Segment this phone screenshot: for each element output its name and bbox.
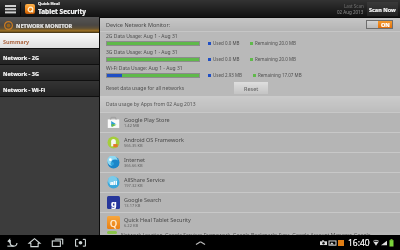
staticText: 3G Data Usage: Aug 1 - Aug 31 [106,49,178,56]
button[interactable]: Android OS Framework [100,132,400,152]
button[interactable]: Q [100,212,400,232]
button[interactable]: Scan Now [367,2,398,16]
staticText: Internet [124,156,146,163]
staticText: Reset data usage for all networks [106,85,185,92]
staticText: Device Network Monitor: [106,21,171,28]
button[interactable]: Network - Wi-Fi [0,81,99,97]
staticText: Remaining 17.07 MB [258,72,302,78]
button[interactable]: Google Play Store [100,112,400,132]
button[interactable]: Summary [0,33,99,49]
staticText: 6.22 KB [124,223,139,228]
staticText: Remaining 20.0 MB [255,40,296,46]
staticText: Data usage by Apps from 02 Aug 2013 [106,101,196,108]
staticText: 566.35 KB [124,143,143,148]
staticText: 197.32 KB [124,183,143,188]
staticText: ON [381,21,390,28]
staticText: g [111,197,117,209]
staticText: Network Location, Google Services Framew… [121,232,371,235]
button[interactable]: Network - 3G [0,65,99,81]
staticText: 2G Data Usage: Aug 1 - Aug 31 [106,33,178,40]
button[interactable]: Network - 2G [0,49,99,65]
staticText: AllShare Service [124,176,165,183]
button[interactable]: Network monitor on [367,21,392,28]
button[interactable]: Home [28,236,41,249]
button[interactable]: Reset [234,82,268,94]
staticText: Android OS Framework [124,136,184,143]
staticText: Network - 2G [3,54,39,61]
button[interactable]: Open navigation menu [0,0,20,17]
staticText: Last Scan [344,3,364,9]
staticText: 02 Aug 2013 [337,9,364,15]
staticText: Reset [244,85,259,92]
button[interactable]: Back [5,236,18,249]
button[interactable]: Recent apps [51,236,64,249]
staticText: Summary [3,38,30,45]
staticText: Used 0.0 MB [213,40,240,46]
staticText: Q [110,217,118,229]
staticText: Google Search [124,196,162,203]
staticText: 13.17 KB [124,203,141,208]
staticText: Quick Heal Tablet Security [124,216,191,223]
staticText: Used 2.93 MB [213,72,243,78]
staticText: 1.42 MB [124,123,140,128]
button[interactable]: Screen capture [74,236,87,249]
staticText: 16:40 [348,237,370,249]
staticText: Tablet Security [38,7,86,16]
staticText: Wi-Fi Data Usage: Aug 1 - Aug 31 [106,65,183,72]
button[interactable]: g [100,192,400,212]
staticText: NETWORK MONITOR [16,22,73,29]
staticText: 366.66 KB [124,163,143,168]
staticText: Google Play Store [124,116,170,123]
button[interactable]: all [100,172,400,192]
staticText: Network - Wi-Fi [3,86,46,93]
button[interactable]: Internet [100,152,400,172]
staticText: Network - 3G [3,70,39,77]
staticText: Scan Now [369,6,396,13]
staticText: Quick Heal [38,1,60,6]
staticText: Used 0.0 MB [213,56,240,62]
staticText: Remaining 20.0 MB [255,56,296,62]
button[interactable]: Show notifications [196,240,205,246]
staticText: all [110,179,118,187]
